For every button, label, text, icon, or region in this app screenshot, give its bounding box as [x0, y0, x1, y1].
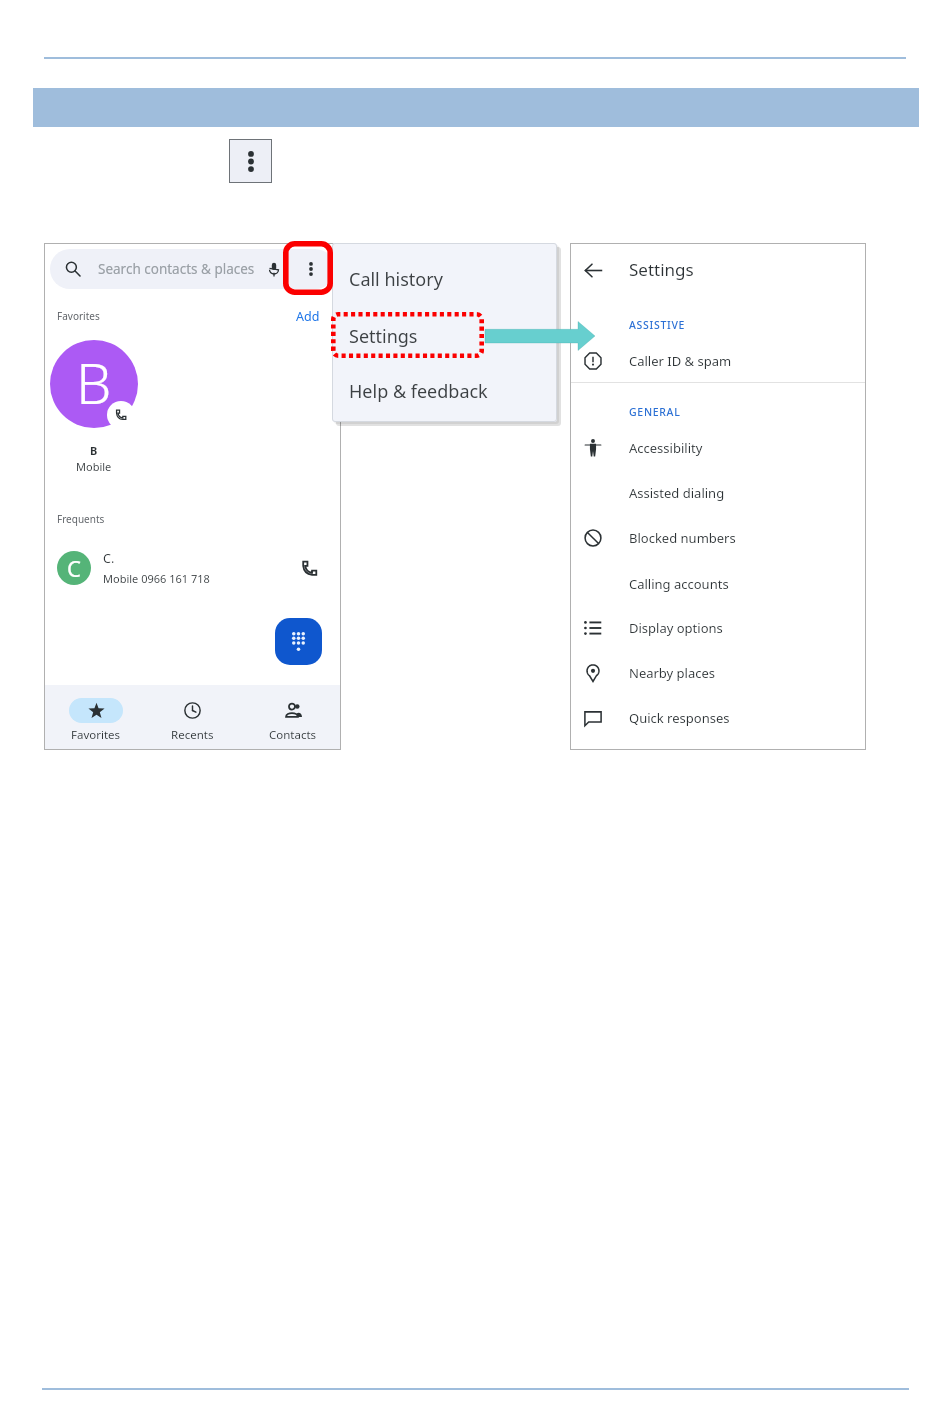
staticText: Mobile 0966 161 718 — [103, 571, 210, 586]
staticText: Calling accounts — [629, 575, 729, 593]
button[interactable]: Back — [579, 256, 607, 284]
staticText: Blocked numbers — [629, 529, 736, 547]
button[interactable]: Recents — [150, 689, 234, 745]
button[interactable]: Favorites — [54, 689, 138, 745]
staticText: Assisted dialing — [629, 484, 725, 502]
button[interactable]: Help & feedback — [332, 371, 557, 411]
button[interactable]: Caller ID & spam — [570, 339, 866, 383]
staticText: GENERAL — [629, 405, 681, 419]
button[interactable]: B — [50, 340, 138, 428]
staticText: Settings — [349, 324, 418, 349]
button[interactable]: Nearby places — [570, 651, 866, 695]
button[interactable]: Settings — [332, 316, 557, 356]
button[interactable]: Call history — [332, 259, 557, 299]
staticText: Help & feedback — [349, 379, 488, 404]
staticText: Quick responses — [629, 709, 730, 727]
button[interactable]: Accessibility — [570, 426, 866, 470]
button[interactable]: Call C. — [294, 553, 324, 583]
button[interactable]: Blocked numbers — [570, 516, 866, 560]
button[interactable]: Quick responses — [570, 696, 866, 740]
staticText: Nearby places — [629, 664, 716, 682]
staticText: Display options — [629, 619, 723, 637]
button[interactable]: Add — [288, 305, 328, 327]
button[interactable]: Assisted dialing — [570, 471, 866, 515]
staticText: C — [67, 553, 81, 583]
button[interactable]: Dialpad — [275, 618, 322, 665]
staticText: Frequents — [57, 512, 105, 526]
button[interactable]: Search contacts & places — [50, 249, 335, 289]
button[interactable]: Calling accounts — [570, 562, 866, 606]
staticText: C. — [103, 550, 115, 567]
staticText: Favorites — [71, 727, 121, 743]
staticText: B — [76, 344, 112, 420]
button[interactable]: More options — [229, 139, 272, 183]
staticText: Contacts — [269, 727, 317, 743]
button[interactable]: Contacts — [251, 689, 335, 745]
staticText: Caller ID & spam — [629, 352, 732, 370]
staticText: Call history — [349, 267, 443, 292]
staticText: Add — [296, 308, 320, 325]
staticText: Favorites — [57, 309, 100, 323]
button[interactable]: Voice search — [260, 255, 288, 283]
staticText: B — [90, 443, 98, 458]
staticText: Recents — [171, 727, 214, 743]
button[interactable]: Call B — [107, 401, 135, 429]
staticText: ASSISTIVE — [629, 318, 686, 332]
staticText: Accessibility — [629, 439, 703, 457]
button[interactable]: Display options — [570, 606, 866, 650]
button[interactable]: C — [44, 545, 341, 591]
staticText: Search contacts & places — [98, 260, 255, 278]
staticText: Settings — [629, 258, 694, 281]
button[interactable]: More options — [297, 255, 325, 283]
staticText: Mobile — [76, 459, 112, 474]
